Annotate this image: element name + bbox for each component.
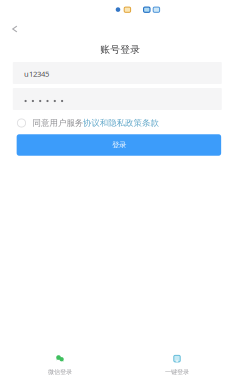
staticText: 账号登录: [100, 43, 140, 56]
staticText: 同意用户服务: [33, 118, 83, 128]
button[interactable]: Back: [1, 16, 29, 42]
staticText: 登录: [112, 140, 126, 150]
button[interactable]: 登录: [17, 134, 221, 156]
button[interactable]: 微信登录: [30, 353, 90, 377]
staticText: 微信登录: [48, 368, 72, 376]
staticText: 协议和隐私政策条款: [83, 118, 158, 128]
staticText: u12345: [24, 69, 49, 79]
button[interactable]: 同意用户服务: [17, 117, 202, 129]
button[interactable]: 一键登录: [147, 353, 207, 377]
staticText: 一键登录: [165, 368, 189, 376]
